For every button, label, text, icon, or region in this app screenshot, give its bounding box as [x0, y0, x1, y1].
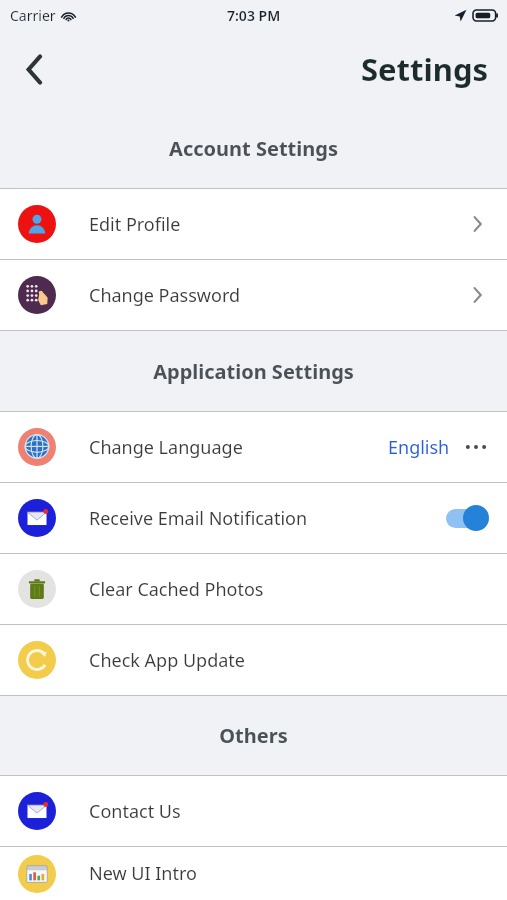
staticText: Change Language: [89, 435, 388, 460]
button[interactable]: New UI Intro: [0, 847, 507, 900]
staticText: Contact Us: [89, 799, 489, 824]
staticText: Account Settings: [169, 135, 338, 162]
staticText: Change Password: [89, 283, 465, 308]
button[interactable]: Change Language: [0, 412, 507, 482]
button[interactable]: Receive Email Notification: [0, 483, 507, 553]
staticText: Check App Update: [89, 648, 489, 673]
staticText: Application Settings: [153, 358, 354, 385]
staticText: Settings: [361, 48, 489, 90]
staticText: Clear Cached Photos: [89, 577, 489, 602]
staticText: Receive Email Notification: [89, 506, 445, 531]
button[interactable]: More language options: [463, 434, 489, 460]
staticText: English: [388, 435, 450, 460]
staticText: Carrier: [10, 6, 56, 25]
staticText: Others: [219, 722, 288, 749]
button[interactable]: Clear Cached Photos: [0, 554, 507, 624]
button[interactable]: Edit Profile: [0, 189, 507, 259]
button[interactable]: Check App Update: [0, 625, 507, 695]
staticText: Edit Profile: [89, 212, 465, 237]
staticText: New UI Intro: [89, 861, 489, 886]
button[interactable]: Back: [10, 45, 58, 93]
button[interactable]: Contact Us: [0, 776, 507, 846]
button[interactable]: Receive email notification toggle, on: [445, 504, 489, 532]
button[interactable]: Change Password: [0, 260, 507, 330]
staticText: 7:03 PM: [227, 6, 281, 25]
button[interactable]: English: [388, 435, 450, 460]
